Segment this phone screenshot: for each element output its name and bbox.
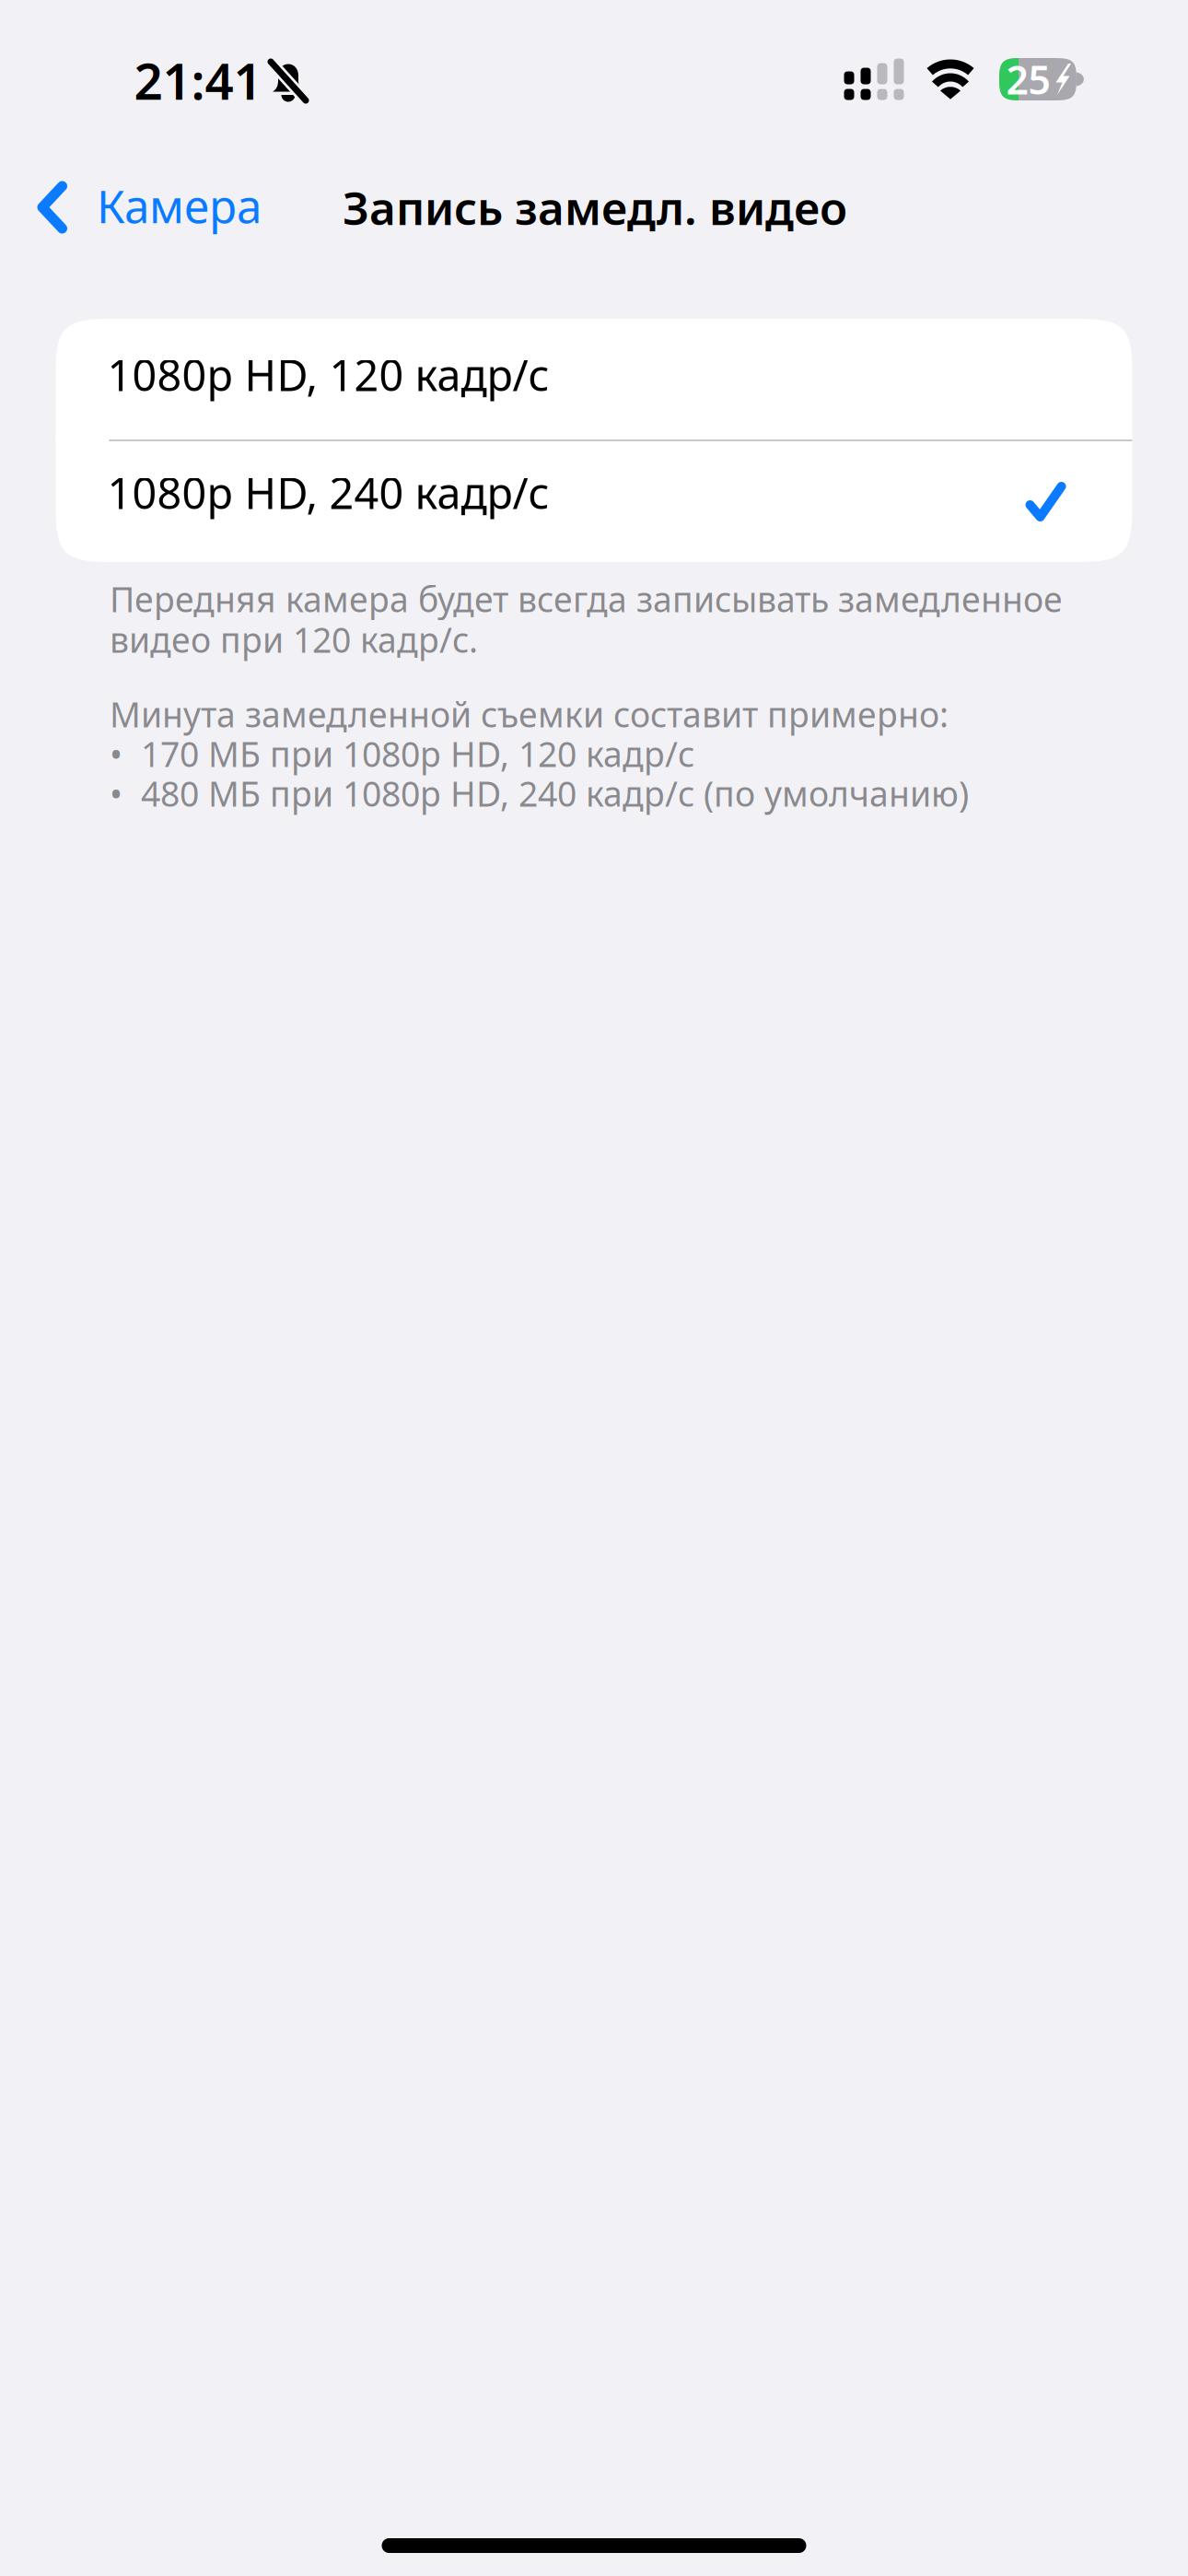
staticText: видео при 120 кадр/с.: [110, 617, 478, 662]
staticText: Передняя камера будет всегда записывать …: [110, 576, 1063, 622]
staticText: • 170 МБ при 1080p HD, 120 кадр/с: [110, 731, 694, 776]
staticText: Минута замедленной съемки составит приме…: [110, 691, 949, 737]
button[interactable]: Камера: [0, 161, 301, 250]
staticText: 1080p HD, 120 кадр/с: [107, 346, 549, 403]
button[interactable]: 1080p HD, 120 кадр/с: [56, 319, 1132, 439]
staticText: Запись замедл. видео: [343, 177, 847, 237]
staticText: 21:41: [134, 47, 262, 114]
button[interactable]: 1080p HD, 240 кадр/с: [56, 441, 1132, 562]
staticText: 1080p HD, 240 кадр/с: [107, 464, 549, 521]
staticText: 25: [1006, 53, 1050, 105]
staticText: • 480 МБ при 1080p HD, 240 кадр/с (по ум…: [110, 770, 969, 816]
staticText: Камера: [97, 175, 262, 236]
